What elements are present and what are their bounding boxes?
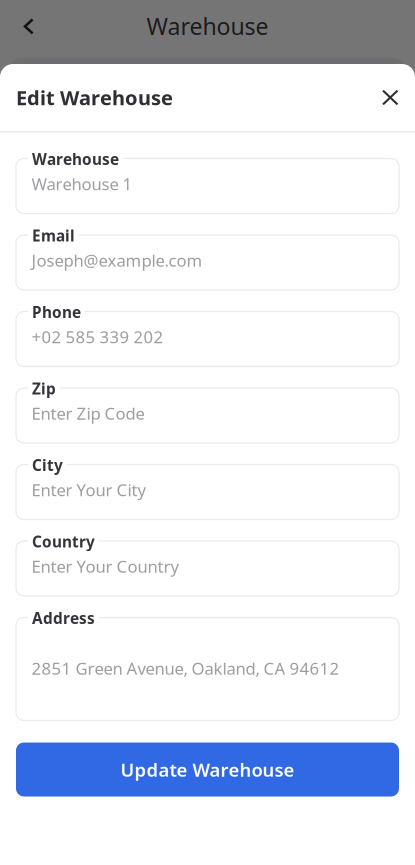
staticText: City (32, 454, 63, 475)
staticText: 2851 Green Avenue, Oakland, CA 94612 (31, 657, 339, 680)
staticText: Country (32, 531, 95, 552)
button[interactable]: Update Warehouse (16, 742, 399, 796)
staticText: Warehouse (32, 148, 119, 169)
staticText: Zip (32, 378, 56, 399)
staticText: Enter Zip Code (31, 402, 144, 425)
staticText: Enter Your City (31, 478, 146, 501)
staticText: Joseph@example.com (31, 249, 202, 272)
staticText: Phone (32, 301, 81, 322)
staticText: +02 585 339 202 (31, 325, 163, 348)
staticText: Warehouse (146, 10, 268, 42)
button[interactable]: Back (10, 8, 44, 44)
staticText: Address (32, 607, 95, 628)
staticText: Edit Warehouse (16, 84, 173, 111)
staticText: Enter Your Country (31, 555, 179, 578)
staticText: Update Warehouse (120, 757, 294, 782)
staticText: Warehouse 1 (31, 172, 132, 195)
button[interactable]: Close (376, 83, 405, 112)
staticText: Email (32, 225, 75, 246)
